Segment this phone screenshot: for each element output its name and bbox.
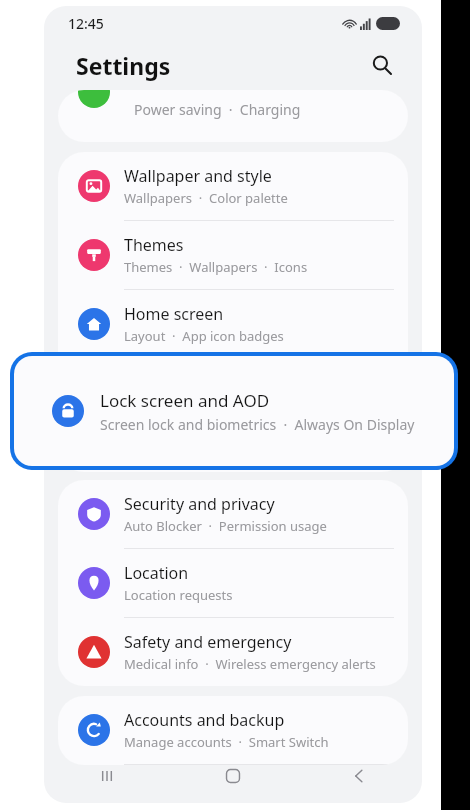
staticText: Layout · App icon badges xyxy=(124,327,284,345)
button[interactable]: Themes xyxy=(58,221,408,289)
staticText: Auto Blocker · Permission usage xyxy=(124,517,327,535)
staticText: Location xyxy=(124,562,189,584)
button[interactable]: Home screen xyxy=(58,290,408,358)
staticText: 12:45 xyxy=(68,14,104,33)
staticText: Lock screen and AOD xyxy=(100,389,270,412)
staticText: Settings xyxy=(76,50,171,81)
staticText: Screen lock and biometrics · Always On D… xyxy=(100,415,415,434)
button[interactable]: Accounts and backup xyxy=(58,696,408,764)
staticText: Medical info · Wireless emergency alerts xyxy=(124,655,376,673)
button[interactable]: Security and privacy xyxy=(58,480,408,548)
staticText: Location requests xyxy=(124,586,233,604)
staticText: Safety and emergency xyxy=(124,631,292,653)
button[interactable]: Safety and emergency xyxy=(58,618,408,686)
staticText: Wallpaper and style xyxy=(124,165,272,187)
button[interactable]: Wallpaper and style xyxy=(58,152,408,220)
button[interactable]: Lock screen and AOD xyxy=(10,352,458,470)
staticText: Themes xyxy=(124,234,184,256)
button[interactable]: Power saving · Charging xyxy=(58,90,408,142)
staticText: Manage accounts · Smart Switch xyxy=(124,733,329,751)
staticText: Power saving · Charging xyxy=(134,100,301,119)
button[interactable]: Location xyxy=(58,549,408,617)
staticText: Themes · Wallpapers · Icons xyxy=(124,258,308,276)
staticText: Wallpapers · Color palette xyxy=(124,189,288,207)
button[interactable]: Back xyxy=(296,749,422,803)
button[interactable]: Recents xyxy=(44,749,170,803)
button[interactable]: Home xyxy=(170,749,296,803)
button[interactable]: Search xyxy=(366,49,398,81)
staticText: Accounts and backup xyxy=(124,709,285,731)
staticText: Home screen xyxy=(124,303,224,325)
staticText: Security and privacy xyxy=(124,493,275,515)
